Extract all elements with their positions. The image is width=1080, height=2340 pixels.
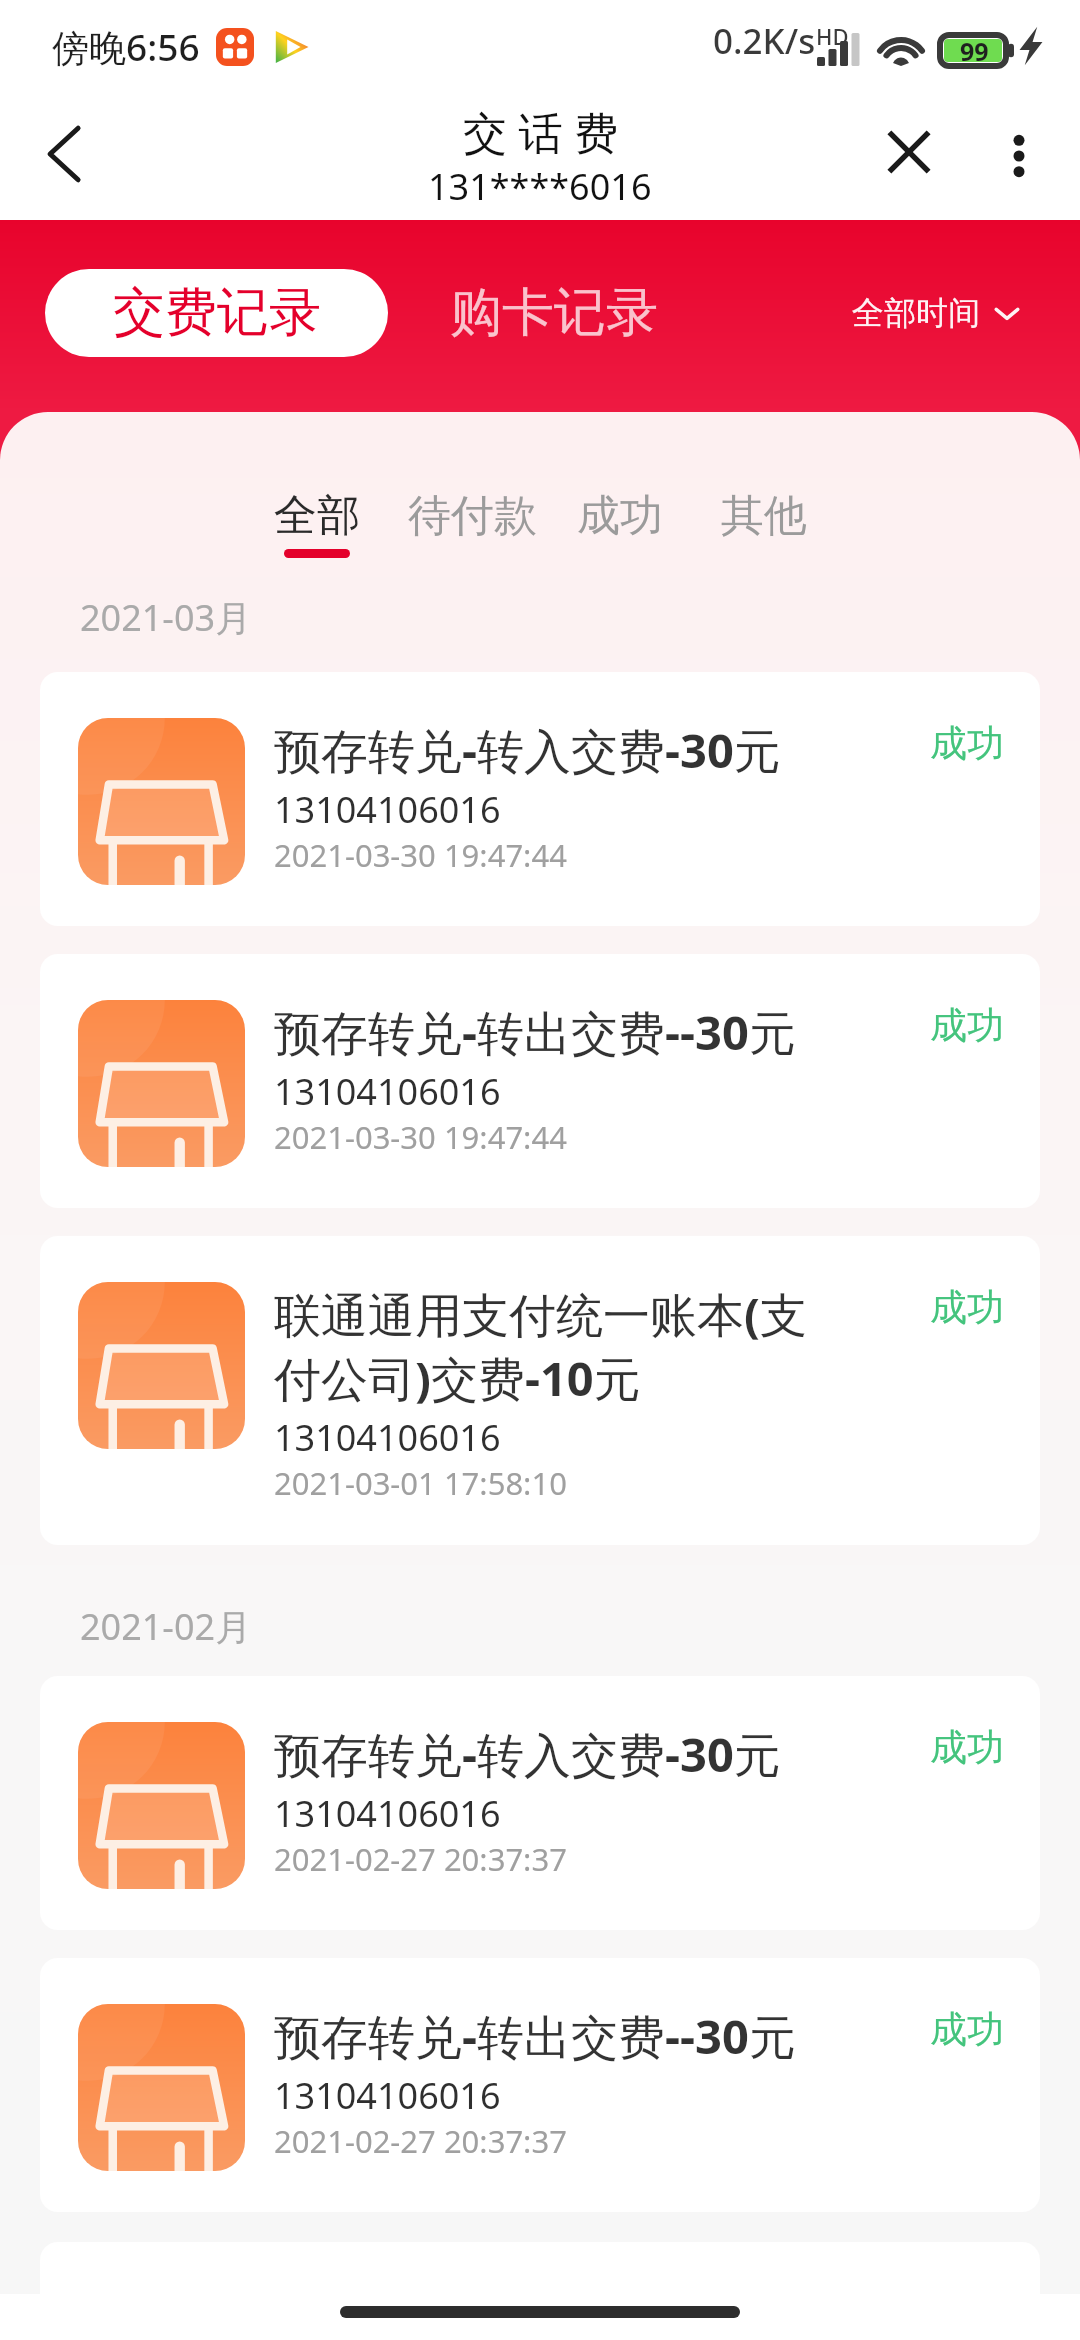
staticText: 0.2K/s bbox=[713, 17, 816, 65]
staticText: 13104106016 bbox=[274, 2071, 501, 2120]
button[interactable]: 预存转兑-转入交费-30元 bbox=[40, 1676, 1040, 1930]
staticText: 2021-03-30 19:47:44 bbox=[274, 834, 567, 876]
staticText: 其他 bbox=[721, 489, 807, 543]
staticText: 全部 bbox=[274, 489, 360, 543]
staticText: 待付款 bbox=[408, 489, 537, 543]
staticText: 预存转兑-转出交费--30元 bbox=[274, 1000, 796, 1064]
staticText: 傍晚6:56 bbox=[52, 21, 200, 72]
button[interactable]: 购卡记录 bbox=[446, 262, 662, 364]
button[interactable]: Back bbox=[18, 110, 118, 210]
button[interactable]: 预存转兑-转出交费--30元 bbox=[40, 954, 1040, 1208]
button[interactable]: 全部时间 bbox=[852, 277, 1022, 349]
staticText: 成功 bbox=[577, 489, 663, 543]
button[interactable]: 预存转兑-转入交费-30元 bbox=[40, 672, 1040, 926]
staticText: 13104106016 bbox=[274, 1413, 501, 1462]
staticText: 交 话 费 bbox=[463, 102, 618, 162]
button[interactable]: Home bbox=[340, 2306, 740, 2318]
staticText: 联通通用支付统一账本(支 bbox=[274, 1282, 807, 1346]
staticText: 预存转兑-转入交费-30元 bbox=[274, 1722, 781, 1786]
button[interactable]: More options bbox=[969, 106, 1069, 206]
staticText: 成功 bbox=[930, 1002, 1004, 1049]
staticText: 99 bbox=[960, 34, 989, 65]
staticText: 购卡记录 bbox=[450, 280, 658, 346]
staticText: 2021-02-27 20:37:37 bbox=[274, 2120, 567, 2162]
staticText: 成功 bbox=[930, 2006, 1004, 2053]
staticText: 成功 bbox=[930, 720, 1004, 767]
staticText: 2021-02月 bbox=[80, 1602, 252, 1651]
staticText: 2021-02-27 20:37:37 bbox=[274, 1838, 567, 1880]
button[interactable]: 其他 bbox=[715, 487, 813, 551]
staticText: HD bbox=[816, 21, 849, 51]
staticText: 2021-03月 bbox=[80, 593, 252, 642]
staticText: 付公司)交费-10元 bbox=[274, 1346, 641, 1410]
staticText: 预存转兑-转出交费--30元 bbox=[274, 2004, 796, 2068]
staticText: 成功 bbox=[930, 1724, 1004, 1771]
staticText: 13104106016 bbox=[274, 1789, 501, 1838]
staticText: 成功 bbox=[930, 1284, 1004, 1331]
button[interactable]: 联通通用支付统一账本(支 bbox=[40, 1236, 1040, 1545]
button[interactable]: 成功 bbox=[571, 487, 669, 551]
staticText: 2021-03-01 17:58:10 bbox=[274, 1462, 567, 1504]
staticText: 13104106016 bbox=[274, 785, 501, 834]
staticText: 全部时间 bbox=[852, 293, 980, 333]
staticText: 2021-03-30 19:47:44 bbox=[274, 1116, 567, 1158]
button[interactable]: 预存转兑-转出交费--30元 bbox=[40, 1958, 1040, 2212]
button[interactable]: 全部 bbox=[268, 487, 366, 560]
staticText: 13104106016 bbox=[274, 1067, 501, 1116]
button[interactable]: 交费记录 bbox=[45, 269, 388, 357]
staticText: 131****6016 bbox=[428, 162, 652, 211]
staticText: 交费记录 bbox=[113, 280, 321, 346]
staticText: 预存转兑-转入交费-30元 bbox=[274, 718, 781, 782]
button[interactable]: Close bbox=[859, 102, 959, 202]
button[interactable]: 待付款 bbox=[402, 487, 543, 551]
